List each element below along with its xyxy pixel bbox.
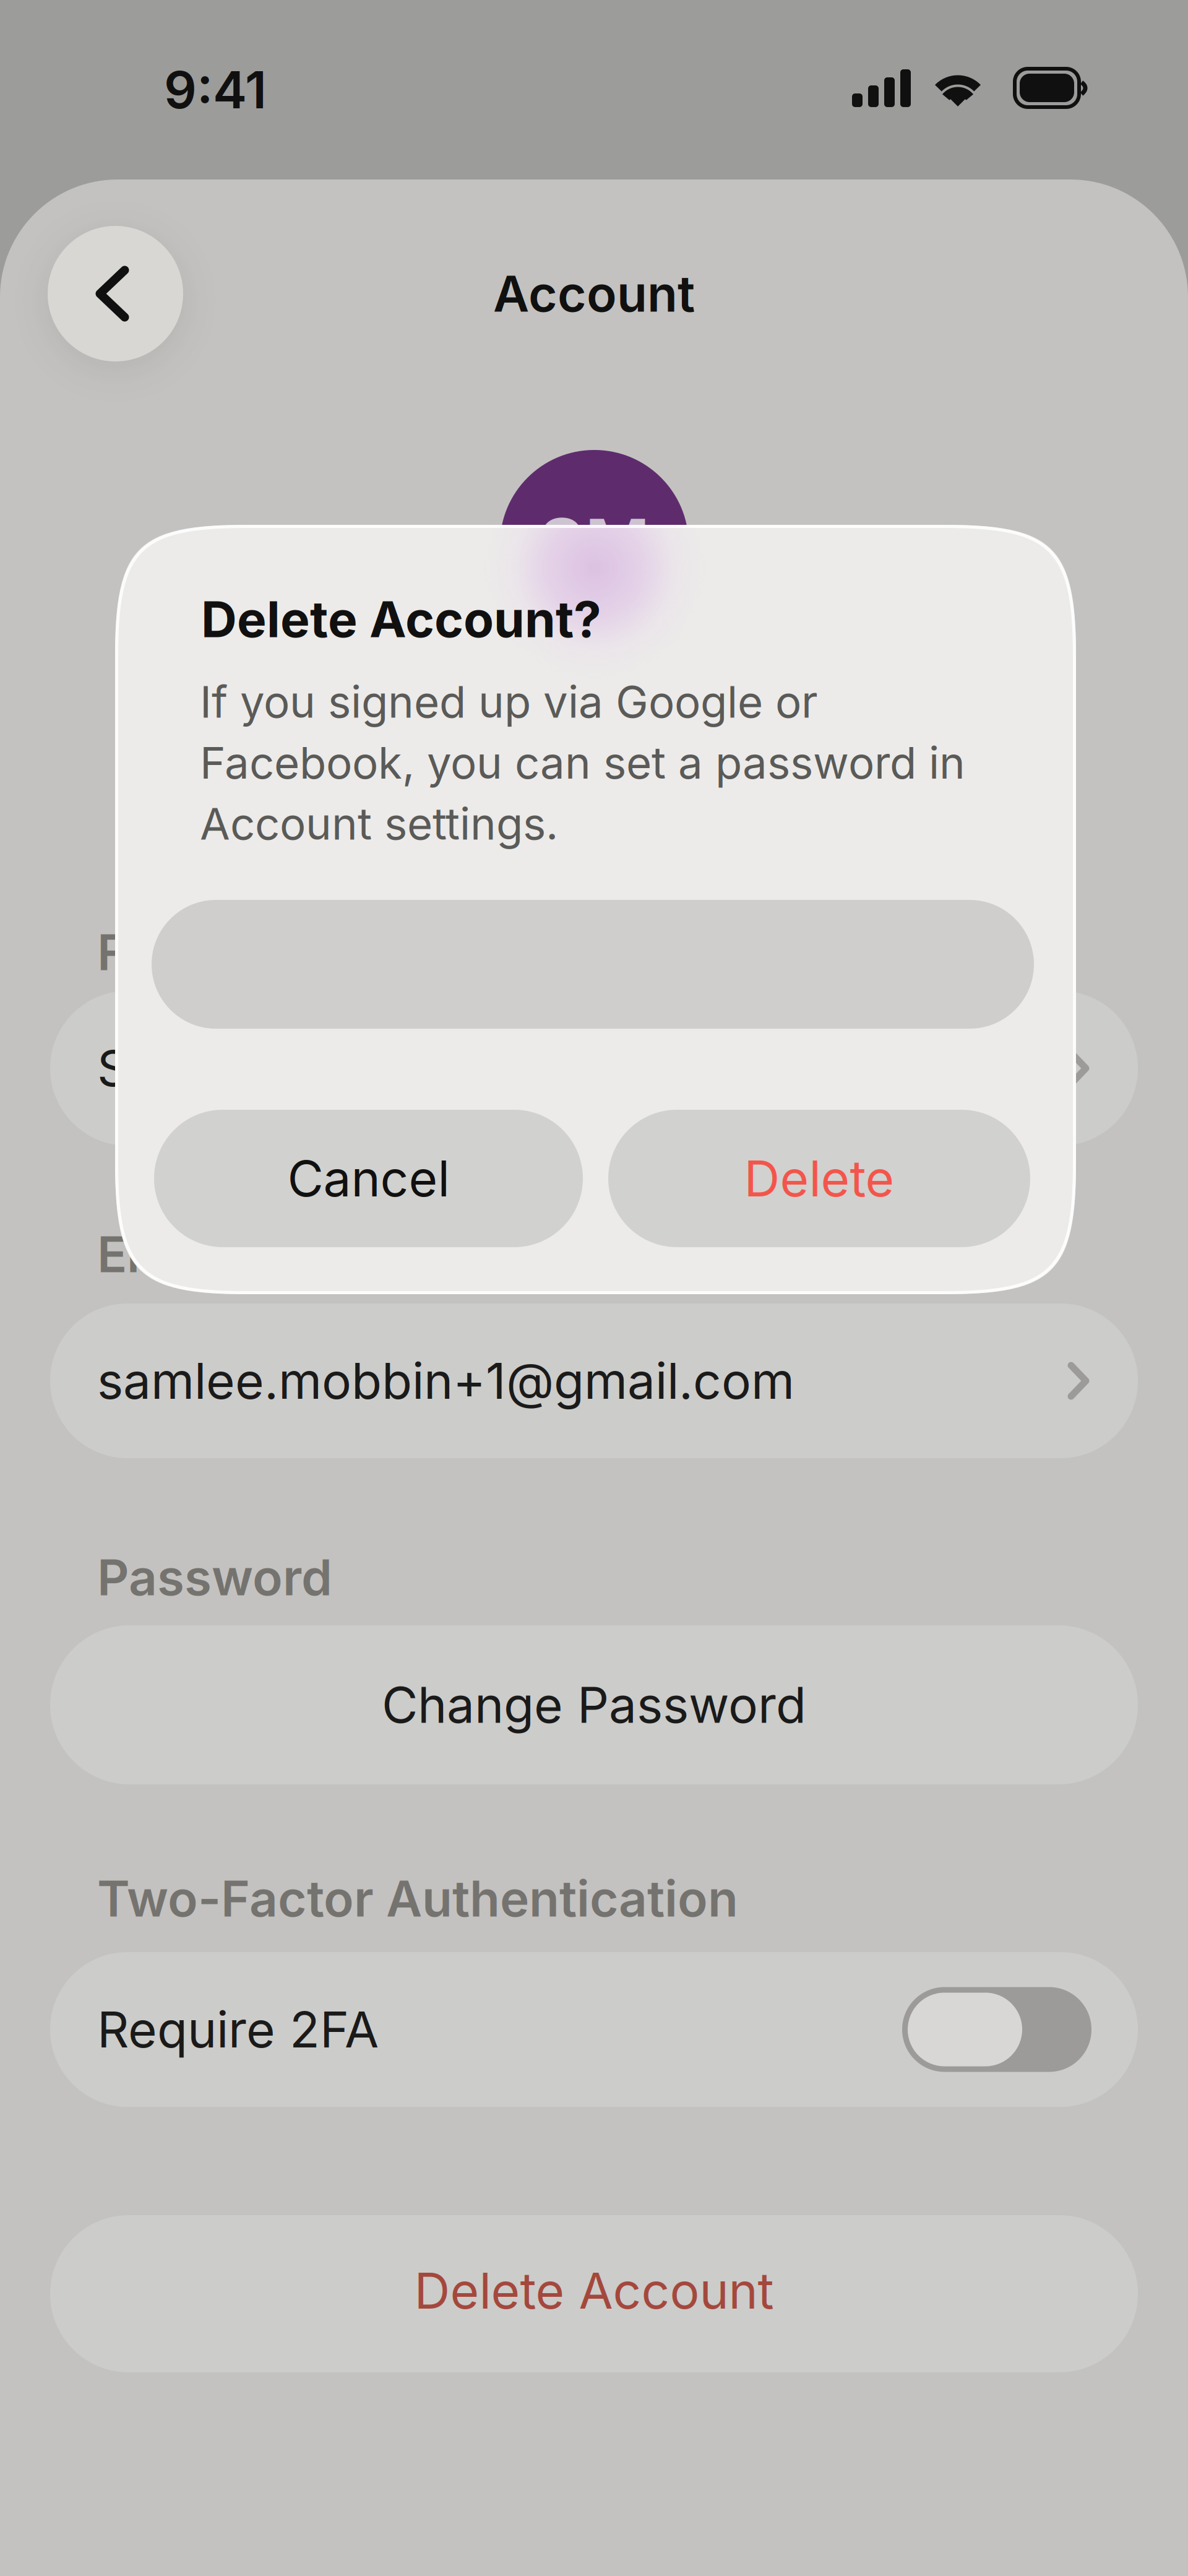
staticText: Delete Account? bbox=[201, 589, 601, 649]
staticText: Require 2FA bbox=[97, 2000, 379, 2059]
button[interactable]: Change Password bbox=[50, 1625, 1138, 1784]
staticText: SM bbox=[538, 501, 650, 587]
staticText: samlee.mobbin+1@gmail.com bbox=[97, 1351, 794, 1411]
button[interactable]: samlee.mobbin+1@gmail.com bbox=[50, 1303, 1138, 1458]
staticText: Cancel bbox=[287, 1148, 450, 1208]
staticText: Delete Account bbox=[414, 2261, 774, 2321]
staticText: 9:41 bbox=[164, 59, 267, 121]
button[interactable]: Cancel bbox=[154, 1110, 583, 1247]
staticText: Change Password bbox=[382, 1675, 806, 1735]
staticText: Delete bbox=[744, 1148, 894, 1208]
staticText: Full Name bbox=[97, 922, 333, 982]
button[interactable]: Require 2FA bbox=[902, 1987, 1091, 2072]
staticText: Email bbox=[97, 1224, 226, 1284]
button[interactable]: Samantha Mobbin bbox=[50, 991, 1138, 1146]
button[interactable]: Delete Account bbox=[50, 2215, 1138, 2372]
staticText: Account bbox=[493, 264, 695, 324]
staticText: Two-Factor Authentication bbox=[97, 1869, 738, 1928]
staticText: If you signed up via Google or Facebook,… bbox=[200, 675, 965, 850]
button[interactable]: Delete bbox=[608, 1110, 1030, 1247]
staticText: Password bbox=[97, 1547, 332, 1607]
staticText: Samantha Mobbin bbox=[97, 1038, 520, 1098]
button[interactable]: Back bbox=[48, 226, 183, 361]
